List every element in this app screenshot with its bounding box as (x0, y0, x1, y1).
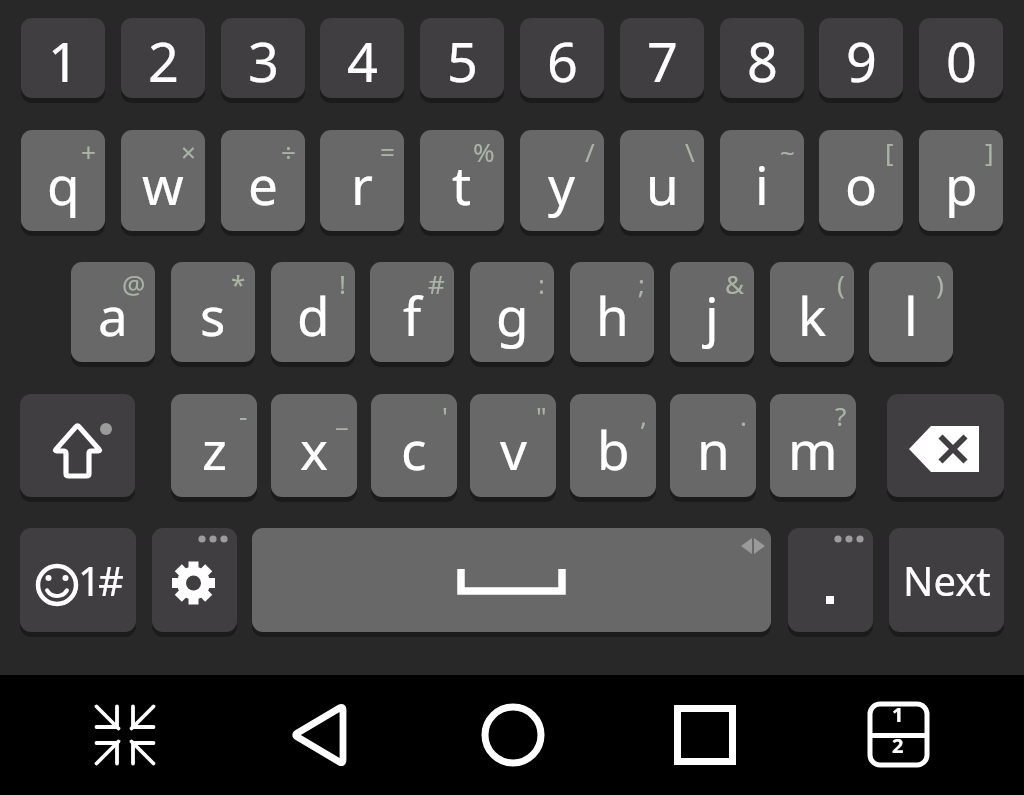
staticText: 1 (48, 24, 79, 98)
staticText: ; (638, 266, 645, 301)
staticText: b (597, 413, 630, 485)
staticText: % (473, 134, 495, 169)
button[interactable]: Next (889, 528, 1004, 632)
staticText: g (496, 279, 529, 351)
button[interactable]: 8 (720, 18, 804, 98)
button[interactable]: i (720, 130, 804, 231)
staticText: d (297, 279, 330, 351)
staticText: × (181, 134, 196, 169)
button[interactable]: z (171, 394, 257, 497)
button[interactable]: k (770, 262, 854, 362)
button[interactable] (473, 695, 553, 775)
staticText: ( (837, 266, 845, 301)
staticText: : (538, 266, 545, 301)
button[interactable] (788, 528, 873, 632)
staticText: * (231, 266, 246, 301)
staticText: y (548, 148, 576, 220)
staticText: 6 (547, 24, 578, 98)
staticText: , (640, 398, 647, 433)
staticText: v (500, 413, 527, 485)
staticText: & (725, 266, 745, 301)
staticText: 2 (148, 24, 179, 98)
staticText: 8 (747, 24, 778, 98)
button[interactable]: 2 (121, 18, 205, 98)
button[interactable]: 6 (520, 18, 604, 98)
staticText: . (740, 398, 747, 433)
staticText: \ (685, 134, 695, 169)
button[interactable]: t (420, 130, 504, 231)
button[interactable]: 1 (858, 695, 938, 775)
staticText: j (705, 279, 719, 351)
staticText: 9 (846, 24, 877, 98)
staticText: u (646, 148, 679, 220)
staticText: w (142, 148, 184, 220)
staticText: 4 (347, 24, 378, 98)
staticText: 2 (892, 732, 904, 759)
button[interactable]: 7 (620, 18, 704, 98)
button[interactable] (85, 695, 165, 775)
staticText: _ (336, 398, 348, 433)
button[interactable] (887, 394, 1004, 497)
button[interactable]: r (320, 130, 404, 231)
button[interactable]: y (520, 130, 604, 231)
button[interactable]: l (869, 262, 953, 362)
staticText: + (81, 134, 96, 169)
staticText: f (403, 279, 422, 351)
button[interactable]: h (570, 262, 654, 362)
button[interactable] (280, 695, 360, 775)
button[interactable]: u (620, 130, 704, 231)
button[interactable]: d (271, 262, 355, 362)
staticText: q (47, 148, 80, 220)
staticText: # (428, 266, 445, 301)
staticText: i (755, 148, 769, 220)
button[interactable]: s (171, 262, 255, 362)
staticText: t (452, 148, 472, 220)
staticText: 3 (248, 24, 279, 98)
button[interactable]: o (819, 130, 903, 231)
button[interactable]: 5 (420, 18, 504, 98)
button[interactable]: c (371, 394, 457, 497)
staticText: n (697, 413, 730, 485)
button[interactable]: 9 (819, 18, 903, 98)
button[interactable]: v (470, 394, 556, 497)
button[interactable] (252, 528, 771, 632)
staticText: x (300, 413, 329, 485)
button[interactable]: m (770, 394, 856, 497)
button[interactable]: 1# (20, 528, 136, 632)
button[interactable]: p (919, 130, 1003, 231)
button[interactable] (152, 528, 237, 632)
staticText: k (798, 279, 827, 351)
button[interactable]: 3 (221, 18, 305, 98)
staticText: ÷ (281, 134, 296, 169)
staticText: m (788, 413, 838, 485)
staticText: 7 (647, 24, 678, 98)
button[interactable]: 1 (21, 18, 105, 98)
staticText: ] (985, 134, 994, 169)
button[interactable]: 4 (320, 18, 404, 98)
staticText: 1 (892, 701, 904, 728)
staticText: ) (936, 266, 944, 301)
button[interactable]: a (71, 262, 155, 362)
button[interactable]: 0 (919, 18, 1003, 98)
staticText: / (585, 134, 595, 169)
staticText: z (202, 413, 227, 485)
staticText: ~ (780, 134, 795, 169)
button[interactable]: f (370, 262, 454, 362)
button[interactable]: j (670, 262, 754, 362)
staticText: h (596, 279, 629, 351)
staticText: [ (885, 134, 894, 169)
staticText: p (945, 148, 978, 220)
button[interactable]: x (271, 394, 357, 497)
staticText: ? (835, 398, 847, 433)
staticText: l (904, 279, 918, 351)
button[interactable] (20, 394, 135, 497)
button[interactable] (665, 695, 745, 775)
button[interactable]: n (670, 394, 756, 497)
button[interactable]: q (21, 130, 105, 231)
button[interactable]: g (470, 262, 554, 362)
button[interactable]: w (121, 130, 205, 231)
button[interactable]: e (221, 130, 305, 231)
staticText: Next (903, 553, 991, 607)
button[interactable]: b (570, 394, 656, 497)
staticText: ! (339, 266, 346, 301)
